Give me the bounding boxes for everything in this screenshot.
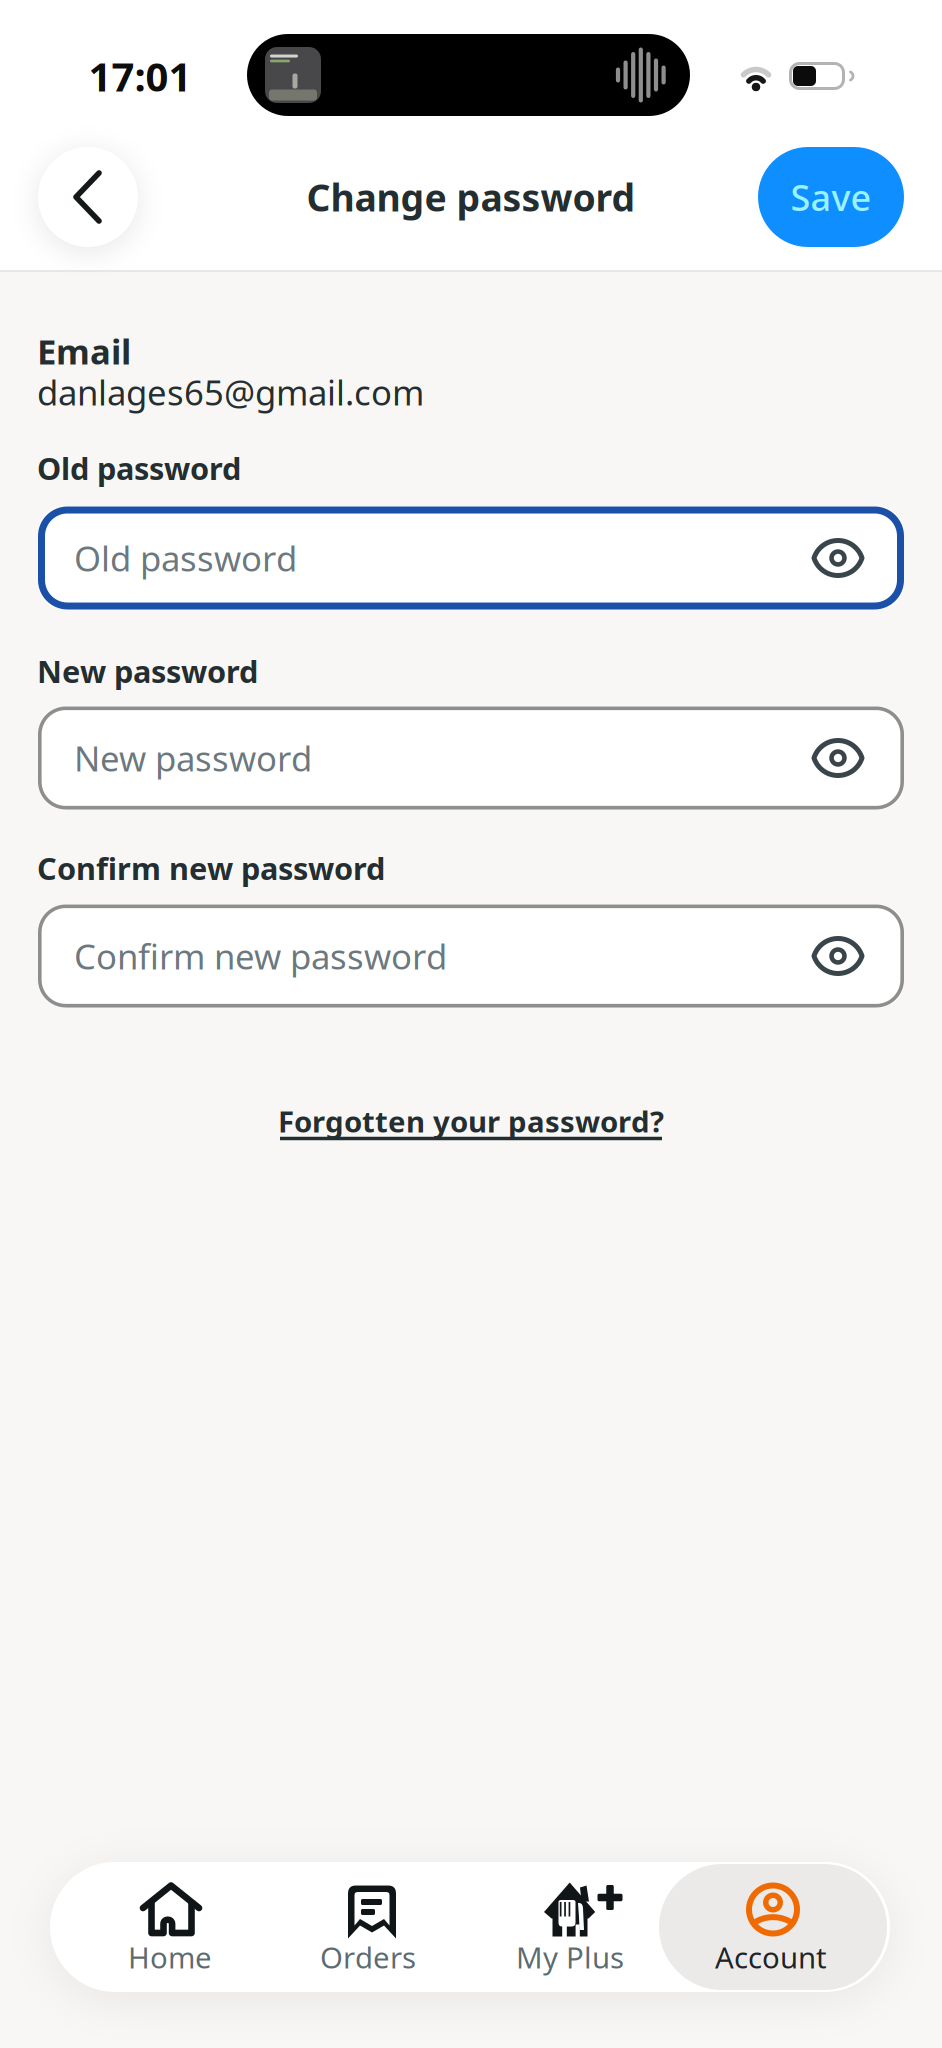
button[interactable]: Old password [38,506,904,609]
button[interactable]: Orders [274,1862,464,1992]
button[interactable]: Show password [803,523,873,593]
button[interactable]: My Plus [470,1862,670,1992]
button[interactable]: Back [38,147,138,247]
staticText: Home [128,1937,212,1976]
staticText: Account [715,1937,827,1976]
staticText: New password [74,735,312,781]
staticText: Old password [74,535,297,581]
button[interactable]: Show password [803,921,873,991]
staticText: My Plus [516,1937,624,1976]
staticText: Confirm new password [37,848,385,888]
staticText: Forgotten your password? [278,1101,664,1140]
button[interactable]: Save [758,147,904,247]
button[interactable]: Show password [803,723,873,793]
staticText: Change password [306,172,635,222]
button[interactable]: Confirm new password [38,904,904,1007]
button[interactable]: Home [75,1862,265,1992]
button[interactable]: New password [38,706,904,809]
button[interactable]: Account [659,1864,887,1990]
staticText: Old password [37,448,241,488]
staticText: danlages65@gmail.com [37,369,424,415]
staticText: New password [37,651,258,691]
staticText: Email [37,328,131,374]
staticText: Save [790,173,871,221]
button[interactable]: Forgotten your password? [271,1094,671,1154]
staticText: Orders [320,1937,416,1976]
staticText: Confirm new password [74,933,447,979]
staticText: 17:01 [88,49,191,102]
